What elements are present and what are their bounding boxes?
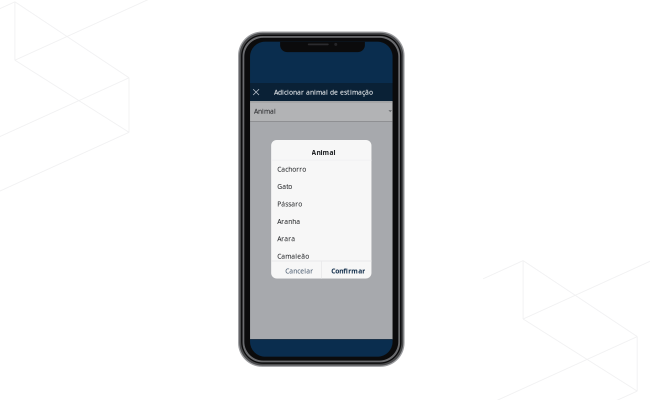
button[interactable]: Pássaro (271, 195, 371, 213)
staticText: Animal (254, 107, 276, 116)
button[interactable]: Cachorro (271, 160, 371, 178)
button[interactable]: Arara (271, 230, 371, 247)
staticText: Camaleão (277, 252, 309, 261)
button[interactable]: Gato (271, 178, 371, 195)
staticText: Arara (277, 234, 295, 243)
staticText: Cancelar (285, 266, 313, 275)
button[interactable]: Aranha (271, 213, 371, 230)
staticText: Aranha (277, 217, 300, 226)
button[interactable]: Confirmar (322, 261, 371, 278)
button[interactable]: Animal (250, 101, 393, 121)
staticText: Pássaro (277, 199, 302, 208)
button[interactable]: Cancelar (271, 261, 321, 278)
staticText: Animal (311, 148, 335, 157)
staticText: Cachorro (277, 165, 306, 174)
button[interactable]: Camaleão (271, 247, 371, 265)
staticText: Adicionar animal de estimação (274, 88, 373, 97)
staticText: Confirmar (331, 266, 365, 275)
staticText: Gato (277, 182, 292, 191)
button[interactable]: Fechar (251, 83, 264, 101)
